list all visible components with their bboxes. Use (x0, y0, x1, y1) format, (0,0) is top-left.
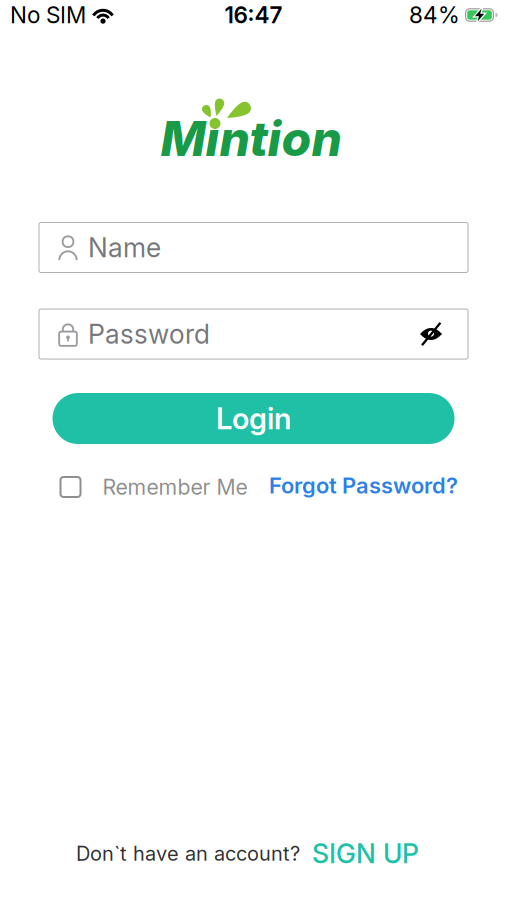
staticText: No SIM (10, 1, 86, 29)
staticText: Name (88, 231, 161, 264)
button[interactable]: Password (38, 308, 468, 359)
button[interactable]: Show password (418, 321, 444, 347)
staticText: SIGN UP (312, 837, 419, 870)
button[interactable]: SIGN UP (312, 837, 419, 870)
staticText: Don`t have an account? (76, 841, 300, 866)
staticText: 84% (409, 1, 460, 29)
staticText: Login (216, 401, 291, 436)
button[interactable]: Forgot Password? (269, 472, 458, 499)
staticText: 16:47 (224, 1, 282, 29)
staticText: Mintion (160, 109, 341, 168)
staticText: Remember Me (102, 474, 247, 500)
button[interactable]: Name (38, 222, 468, 273)
button[interactable]: Remember Me (59, 474, 247, 500)
staticText: Password (88, 318, 210, 350)
staticText: Forgot Password? (269, 472, 458, 499)
button[interactable]: Login (52, 393, 454, 444)
